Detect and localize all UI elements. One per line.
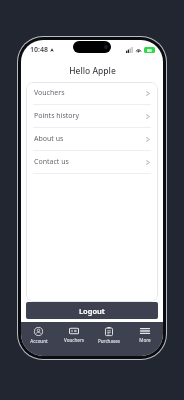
button[interactable]: About us bbox=[26, 128, 158, 150]
staticText: Vouchers bbox=[34, 88, 146, 98]
staticText: Account bbox=[30, 338, 48, 344]
button[interactable]: Vouchers bbox=[56, 322, 91, 356]
staticText: Purchases bbox=[98, 338, 120, 344]
staticText: About us bbox=[34, 134, 146, 144]
staticText: Vouchers bbox=[64, 337, 84, 343]
staticText: More bbox=[139, 337, 151, 343]
staticText: 80 bbox=[147, 48, 152, 53]
button[interactable]: Vouchers bbox=[26, 82, 158, 104]
button[interactable]: Contact us bbox=[26, 151, 158, 173]
staticText: Logout bbox=[79, 306, 105, 316]
staticText: Hello Apple bbox=[69, 65, 116, 77]
staticText: Points history bbox=[34, 111, 146, 121]
staticText: 10:48 bbox=[30, 45, 48, 55]
button[interactable]: Points history bbox=[26, 105, 158, 127]
button[interactable]: More bbox=[127, 322, 163, 356]
button[interactable]: Purchases bbox=[91, 322, 127, 356]
button[interactable]: Account bbox=[21, 322, 56, 356]
staticText: Contact us bbox=[34, 157, 146, 167]
button[interactable]: Logout bbox=[26, 302, 158, 319]
